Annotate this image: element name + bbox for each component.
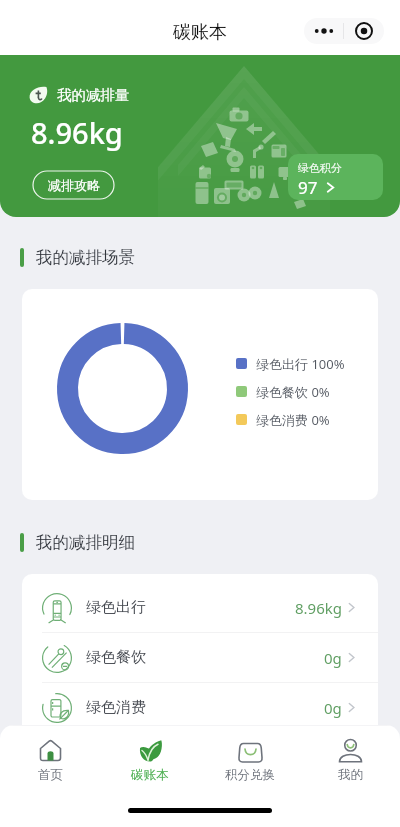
button[interactable]: 绿色消费	[22, 683, 378, 732]
staticText: 8.96kg	[31, 113, 123, 152]
staticText: 碳账本	[131, 767, 169, 783]
button[interactable]: 绿色餐饮	[22, 633, 378, 682]
staticText: 0g	[324, 698, 342, 718]
button[interactable]: 积分兑换	[200, 737, 300, 783]
staticText: 首页	[38, 767, 63, 783]
button[interactable]: More options	[304, 18, 343, 44]
staticText: 我的	[338, 767, 363, 783]
staticText: 碳账本	[173, 21, 227, 44]
button[interactable]: 我的	[300, 737, 400, 783]
staticText: 积分兑换	[225, 767, 275, 783]
staticText: 8.96kg	[295, 598, 342, 618]
staticText: 绿色出行	[86, 598, 146, 617]
button[interactable]: 绿色积分	[288, 154, 383, 200]
staticText: 我的减排量	[57, 86, 130, 104]
staticText: 0g	[324, 648, 342, 668]
staticText: 绿色餐饮	[86, 648, 146, 667]
button[interactable]: Close mini program	[344, 18, 384, 44]
staticText: 绿色餐饮 0%	[256, 383, 330, 399]
staticText: 绿色消费 0%	[256, 411, 330, 427]
staticText: 绿色积分	[298, 161, 342, 175]
staticText: 绿色消费	[86, 698, 146, 717]
staticText: 减排攻略	[48, 177, 100, 193]
staticText: 我的减排场景	[36, 247, 135, 268]
staticText: 97	[298, 176, 318, 199]
button[interactable]: 减排攻略	[33, 171, 114, 199]
button[interactable]: 首页	[0, 737, 100, 783]
button[interactable]: 碳账本	[100, 737, 200, 783]
button[interactable]: 绿色出行	[22, 583, 378, 632]
staticText: 绿色出行 100%	[256, 355, 345, 371]
staticText: 我的减排明细	[36, 532, 135, 553]
